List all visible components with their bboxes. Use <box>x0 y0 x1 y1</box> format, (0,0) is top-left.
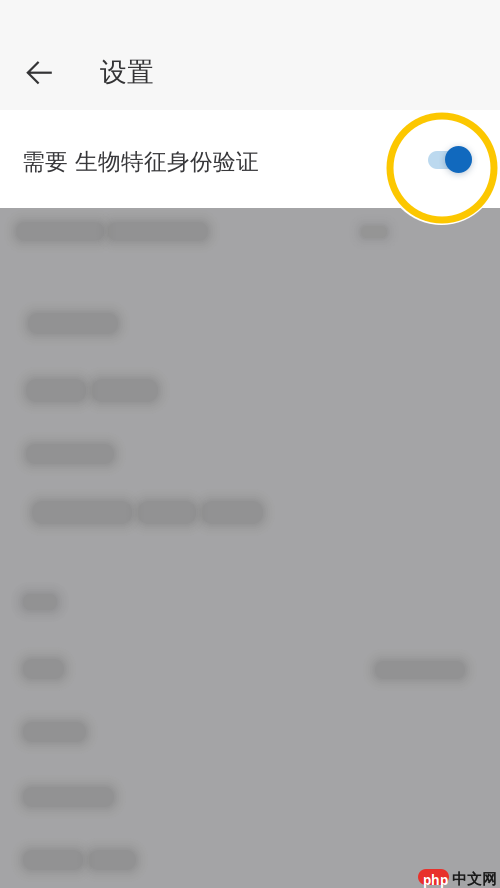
staticText: 设置 <box>100 56 154 89</box>
staticText: 需要 生物特征身份验证 <box>22 148 259 176</box>
button[interactable]: Back <box>12 45 68 101</box>
staticText: php <box>423 871 448 888</box>
staticText: 中文网 <box>452 870 497 888</box>
button[interactable]: 需要 生物特征身份验证 <box>0 110 500 208</box>
button[interactable]: 需要 生物特征身份验证 <box>384 110 500 226</box>
